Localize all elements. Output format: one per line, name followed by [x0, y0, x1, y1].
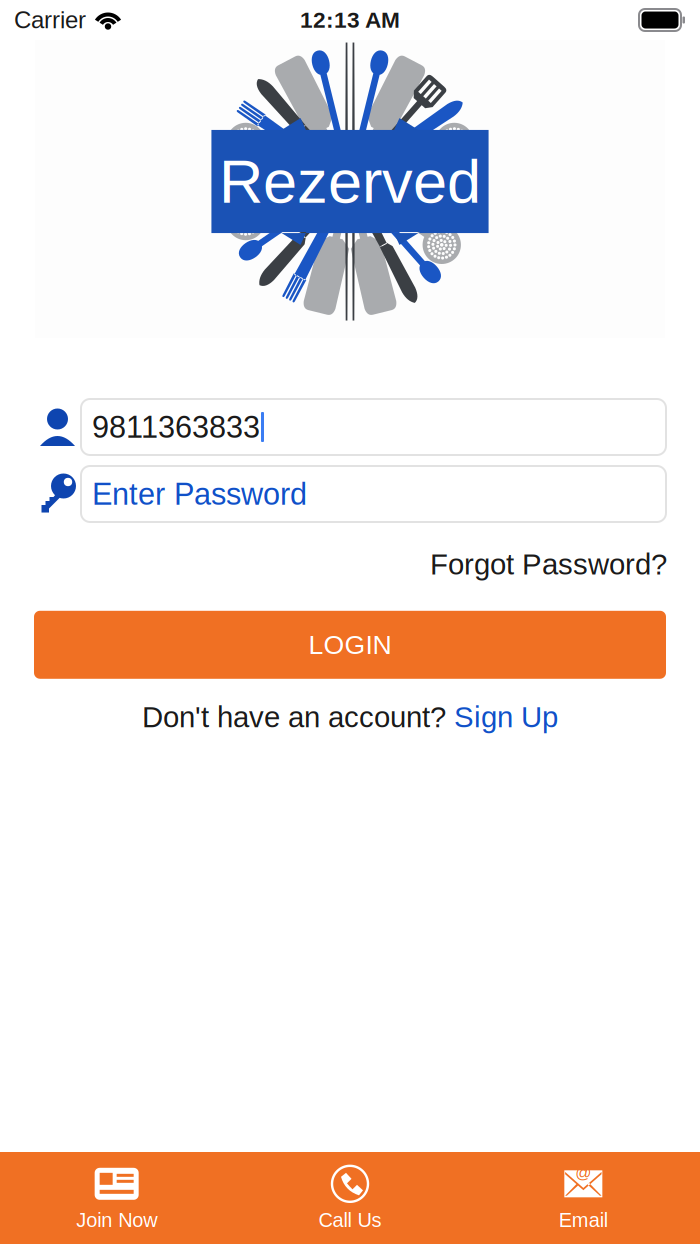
staticText: 9811363833 — [92, 410, 260, 444]
button[interactable]: Join Now — [0, 1152, 233, 1244]
staticText: Sign Up — [454, 701, 558, 734]
staticText: Don't have an account? — [142, 701, 446, 734]
button[interactable]: Call Us — [233, 1152, 467, 1244]
staticText: Carrier — [14, 7, 86, 33]
staticText: Enter Password — [92, 477, 307, 511]
button[interactable]: LOGIN — [34, 611, 666, 679]
staticText: Join Now — [76, 1209, 157, 1231]
staticText: Email — [559, 1209, 608, 1231]
staticText: LOGIN — [308, 630, 391, 660]
staticText: Call Us — [318, 1209, 381, 1231]
staticText: 12:13 AM — [300, 7, 400, 33]
button[interactable]: @ — [467, 1152, 700, 1244]
staticText: @ — [575, 1164, 591, 1182]
staticText: Forgot Password? — [430, 548, 667, 581]
button[interactable]: Forgot Password? — [430, 548, 667, 581]
button[interactable]: Sign Up — [454, 701, 558, 734]
staticText: Rezerved — [219, 147, 481, 216]
